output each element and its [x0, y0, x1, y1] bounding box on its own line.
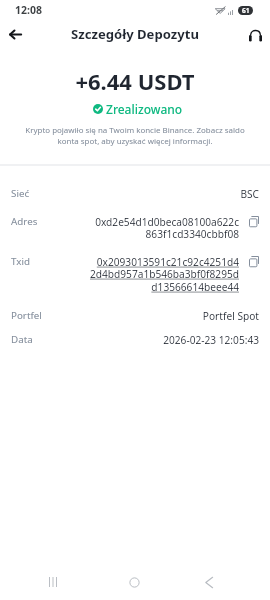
staticText: 0xd2e54d1d0beca08100a622c	[95, 215, 239, 229]
button[interactable]: Ostatnie	[37, 566, 69, 598]
staticText: d13566614beee44	[151, 280, 239, 294]
staticText: 61	[242, 6, 250, 15]
button[interactable]: Obsługa klienta	[244, 25, 266, 47]
button[interactable]: Wstecz	[3, 22, 27, 46]
staticText: 12:08	[15, 3, 42, 17]
staticText: Data	[11, 333, 33, 346]
staticText: 0x2093013591c21c92c4251d4	[96, 255, 239, 269]
staticText: 2026-02-23 12:05:43	[163, 333, 259, 346]
staticText: Portfel	[11, 309, 42, 322]
button[interactable]: Ekran główny	[118, 566, 150, 598]
staticText: Sieć	[11, 187, 30, 200]
staticText: Szczegóły Depozytu	[71, 25, 199, 43]
staticText: konta spot, aby uzyskać więcej informacj…	[0, 136, 270, 147]
staticText: Zrealizowano	[106, 101, 183, 117]
staticText: Portfel Spot	[202, 309, 259, 322]
staticText: +6.44 USDT	[0, 66, 270, 96]
staticText: Adres	[11, 215, 38, 228]
staticText: Krypto pojawiło się na Twoim koncie Bina…	[0, 125, 270, 136]
staticText: Txid	[11, 255, 30, 268]
staticText: 2d4bd957a1b546ba3bf0f8295d	[89, 267, 239, 281]
button[interactable]: Kopiuj	[249, 216, 259, 227]
button[interactable]: Kopiuj	[249, 256, 259, 267]
button[interactable]: Wstecz	[193, 566, 225, 598]
staticText: 863f1cd3340cbbf08	[145, 227, 239, 241]
staticText: BSC	[240, 187, 259, 200]
